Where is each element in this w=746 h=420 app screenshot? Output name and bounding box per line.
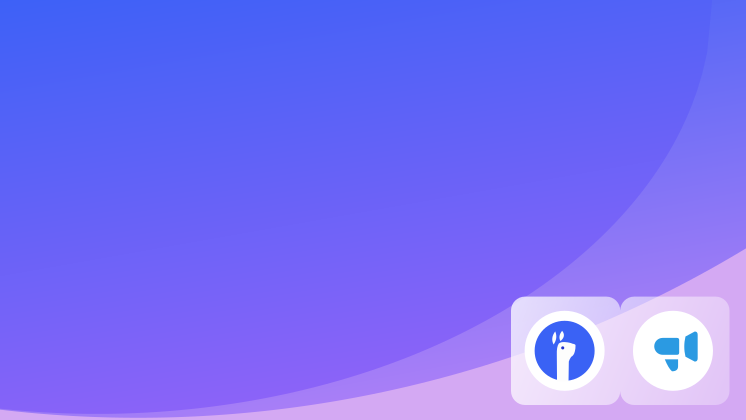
- button[interactable]: Open app: [511, 297, 620, 405]
- button[interactable]: Announcements: [620, 297, 729, 405]
